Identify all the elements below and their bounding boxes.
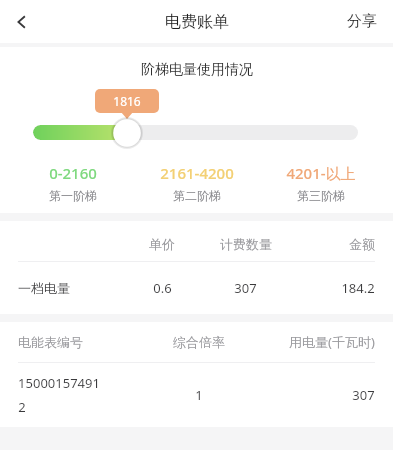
staticText: 0-2160 — [49, 163, 97, 183]
staticText: 307 — [352, 386, 375, 404]
staticText: 2161-4200 — [160, 163, 234, 183]
staticText: 第二阶梯 — [173, 188, 221, 203]
button[interactable]: 返回 — [0, 0, 44, 43]
staticText: 综合倍率 — [173, 334, 225, 350]
staticText: 电能表编号 — [18, 334, 83, 350]
staticText: 15000157491 — [18, 374, 100, 392]
staticText: 1816 — [113, 93, 141, 109]
staticText: 184.2 — [341, 279, 375, 297]
staticText: 一档电量 — [18, 280, 70, 296]
button[interactable]: 分享 — [331, 2, 393, 41]
staticText: 电费账单 — [165, 12, 229, 32]
staticText: 第三阶梯 — [297, 188, 345, 203]
staticText: 单价 — [149, 236, 175, 252]
staticText: 2 — [18, 398, 26, 416]
staticText: 计费数量 — [220, 236, 272, 252]
button[interactable] — [33, 125, 358, 140]
staticText: 金额 — [349, 236, 375, 252]
staticText: 307 — [234, 279, 257, 297]
staticText: 第一阶梯 — [49, 188, 97, 203]
staticText: 1 — [195, 386, 203, 404]
staticText: 4201-以上 — [286, 163, 356, 183]
staticText: 分享 — [347, 12, 377, 31]
staticText: 用电量(千瓦时) — [289, 333, 375, 351]
staticText: 阶梯电量使用情况 — [141, 61, 253, 79]
staticText: 0.6 — [153, 279, 172, 297]
